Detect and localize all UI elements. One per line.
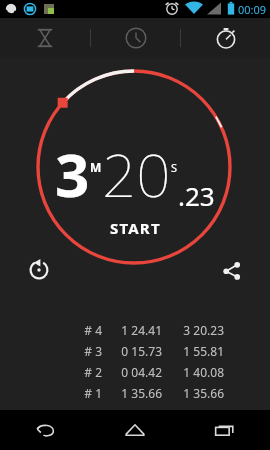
staticText: 00:09 (238, 2, 267, 17)
button[interactable]: Home (90, 410, 180, 450)
button[interactable]: Clock (91, 18, 180, 58)
button[interactable]: # 4 (0, 319, 270, 340)
staticText: START (110, 218, 161, 238)
button[interactable]: START (110, 218, 161, 238)
staticText: # 3 (0, 343, 102, 359)
staticText: 0 04.42 (102, 364, 162, 380)
staticText: # 2 (0, 364, 102, 380)
staticText: 3 (55, 133, 90, 215)
staticText: 1 35.66 (162, 385, 224, 401)
staticText: # 4 (0, 322, 102, 338)
staticText: 1 35.66 (102, 385, 162, 401)
staticText: 3 20.23 (162, 322, 224, 338)
staticText: 1 24.41 (102, 322, 162, 338)
button[interactable]: Reset (22, 253, 56, 287)
button[interactable]: Back (0, 410, 90, 450)
button[interactable]: Timer (0, 18, 90, 58)
staticText: 1 40.08 (162, 364, 224, 380)
button[interactable]: # 1 (0, 382, 270, 403)
staticText: # 1 (0, 385, 102, 401)
staticText: 0 15.73 (102, 343, 162, 359)
button[interactable]: Recents (180, 410, 270, 450)
staticText: 20 (102, 133, 171, 215)
button[interactable]: # 3 (0, 340, 270, 361)
button[interactable]: # 2 (0, 361, 270, 382)
staticText: 1 55.81 (162, 343, 224, 359)
staticText: M (90, 159, 102, 175)
button[interactable]: Stopwatch (181, 18, 270, 58)
button[interactable]: Share (214, 253, 248, 287)
staticText: S (171, 160, 178, 175)
staticText: .23 (178, 178, 215, 213)
